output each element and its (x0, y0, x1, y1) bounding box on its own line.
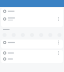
button[interactable] (1, 50, 63, 56)
button[interactable]: Shortcut (37, 33, 46, 37)
button[interactable]: More options (56, 16, 60, 22)
button[interactable] (1, 39, 63, 45)
button[interactable]: More options (56, 50, 60, 56)
button[interactable]: Shortcut (55, 33, 64, 37)
button[interactable]: Shortcut (46, 33, 55, 37)
button[interactable]: Shortcut (0, 33, 9, 37)
button[interactable]: More options (56, 39, 60, 45)
button[interactable] (1, 58, 63, 60)
button[interactable]: Shortcut (27, 33, 36, 37)
button[interactable]: Shortcut (18, 33, 27, 37)
button[interactable] (1, 10, 63, 12)
button[interactable] (1, 16, 63, 22)
button[interactable]: Shortcut (9, 33, 18, 37)
